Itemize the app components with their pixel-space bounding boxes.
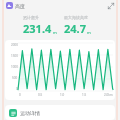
- staticText: 231.4: [23, 21, 52, 36]
- button[interactable]: 累计爬升: [23, 14, 64, 37]
- button[interactable]: Expand chart: [106, 1, 115, 10]
- staticText: m: [87, 30, 91, 35]
- staticText: 500: [12, 76, 18, 80]
- staticText: m: [53, 30, 57, 35]
- staticText: 高度: [15, 3, 25, 9]
- staticText: 1500: [11, 54, 18, 58]
- button[interactable]: 运动详情: [5, 105, 115, 120]
- staticText: 24.7: [64, 21, 86, 36]
- staticText: 运动详情: [20, 110, 40, 116]
- button[interactable]: 最大海拔高度: [64, 14, 105, 37]
- staticText: 0.5: [38, 93, 43, 97]
- staticText: 1.5: [82, 93, 87, 97]
- staticText: 1.0: [60, 93, 65, 97]
- staticText: 最大海拔高度: [64, 15, 88, 20]
- button[interactable]: 2000: [5, 40, 115, 100]
- staticText: 0: [16, 87, 18, 91]
- staticText: 2.0km: [104, 93, 113, 97]
- staticText: 2000: [11, 43, 18, 47]
- button[interactable]: 高度: [5, 1, 26, 10]
- staticText: 0: [19, 93, 21, 97]
- staticText: 累计爬升: [23, 15, 39, 20]
- staticText: 1000: [11, 65, 18, 69]
